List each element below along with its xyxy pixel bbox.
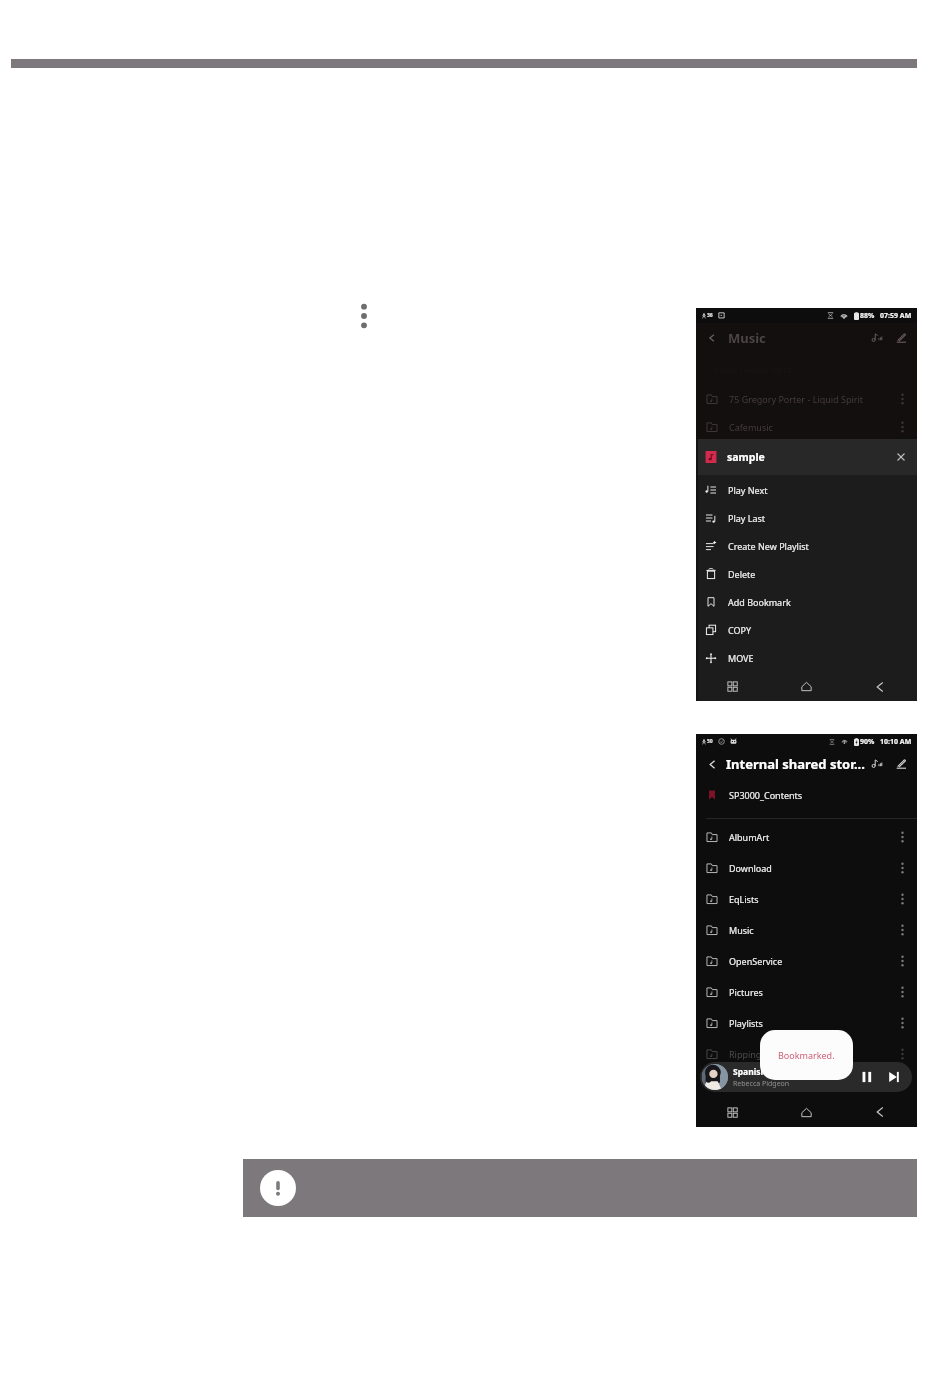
- button[interactable]: Create New Playlist: [696, 532, 917, 560]
- button[interactable]: More options: [897, 919, 907, 941]
- staticText: Ripping: [729, 1048, 762, 1060]
- staticText: sample: [727, 450, 765, 464]
- button[interactable]: sample: [696, 439, 917, 475]
- button[interactable]: Close: [894, 450, 908, 464]
- button[interactable]: More options: [897, 826, 907, 848]
- staticText: Music: [729, 924, 754, 936]
- button[interactable]: Sort: [871, 332, 883, 344]
- button[interactable]: Recent apps: [696, 1097, 769, 1127]
- staticText: 88%: [860, 311, 875, 321]
- button[interactable]: COPY: [696, 616, 917, 644]
- button[interactable]: OpenService: [696, 945, 917, 976]
- staticText: AlbumArt: [729, 831, 770, 843]
- button[interactable]: MOVE: [696, 644, 917, 672]
- button[interactable]: Play Next: [696, 476, 917, 504]
- staticText: Bookmarked.: [778, 1049, 835, 1061]
- button[interactable]: EqLists: [696, 883, 917, 914]
- button[interactable]: Spanish Harlem: [700, 1062, 912, 1092]
- button[interactable]: Playlists: [696, 1007, 917, 1038]
- button[interactable]: Pause: [859, 1069, 875, 1085]
- staticText: Create New Playlist: [728, 540, 809, 552]
- button[interactable]: Back: [843, 1097, 917, 1127]
- staticText: Internal shared stor...: [726, 755, 865, 773]
- button[interactable]: Back: [843, 672, 917, 701]
- staticText: Pictures: [729, 986, 763, 998]
- button[interactable]: More options: [357, 303, 371, 329]
- button[interactable]: Play Last: [696, 504, 917, 532]
- staticText: COPY: [728, 624, 752, 636]
- button[interactable]: More options: [897, 888, 907, 910]
- staticText: Cafemusic: [729, 421, 773, 433]
- staticText: OpenService: [729, 955, 783, 967]
- button[interactable]: More options: [897, 1012, 907, 1034]
- button[interactable]: More options: [897, 857, 907, 879]
- staticText: Playlists: [729, 1017, 763, 1029]
- button[interactable]: Next track: [886, 1069, 902, 1085]
- staticText: 90%: [860, 737, 875, 747]
- button[interactable]: Edit: [895, 758, 907, 770]
- button[interactable]: AlbumArt: [696, 821, 917, 852]
- button[interactable]: Pictures: [696, 976, 917, 1007]
- button[interactable]: More options: [897, 950, 907, 972]
- staticText: EqLists: [729, 893, 759, 905]
- staticText: Play Last: [728, 512, 766, 524]
- button[interactable]: Back: [706, 332, 718, 344]
- button[interactable]: More options: [897, 389, 907, 409]
- staticText: 36: [707, 312, 713, 319]
- button[interactable]: Sort: [871, 758, 883, 770]
- button[interactable]: More options: [897, 1043, 907, 1065]
- button[interactable]: Recent apps: [696, 672, 769, 701]
- button[interactable]: Ripping: [696, 1038, 917, 1069]
- button[interactable]: Music: [696, 914, 917, 945]
- button[interactable]: 75 Gregory Porter - Liquid Spirit: [696, 384, 917, 414]
- staticText: Delete: [728, 568, 756, 580]
- button[interactable]: Cafemusic: [696, 414, 917, 439]
- staticText: Music: [728, 329, 766, 347]
- staticText: Add Bookmark: [728, 596, 791, 608]
- button[interactable]: Home: [769, 672, 843, 701]
- button[interactable]: Add Bookmark: [696, 588, 917, 616]
- button[interactable]: Download: [696, 852, 917, 883]
- button[interactable]: Back: [706, 758, 719, 771]
- staticText: Spanish Harlem: [733, 1066, 800, 1078]
- button[interactable]: Home: [769, 1097, 843, 1127]
- staticText: Play Next: [728, 484, 768, 496]
- staticText: MOVE: [728, 652, 754, 664]
- button[interactable]: Delete: [696, 560, 917, 588]
- staticText: 07:59 AM: [880, 311, 912, 321]
- staticText: 50: [707, 738, 713, 745]
- staticText: SP3000_Contents: [729, 789, 803, 801]
- button[interactable]: More options: [897, 417, 907, 437]
- staticText: Rebecca Pidgeon: [733, 1079, 790, 1089]
- staticText: 10:10 AM: [880, 737, 912, 747]
- staticText: 75 Gregory Porter - Liquid Spirit: [729, 393, 864, 405]
- staticText: Download: [729, 862, 772, 874]
- button[interactable]: Edit: [895, 332, 907, 344]
- button[interactable]: SP3000_Contents: [696, 779, 917, 811]
- button[interactable]: More options: [897, 981, 907, 1003]
